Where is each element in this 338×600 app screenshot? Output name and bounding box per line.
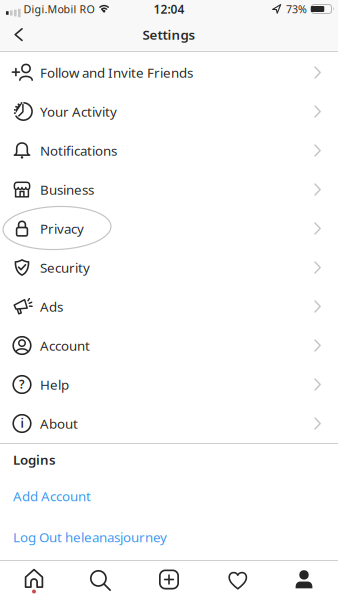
button[interactable]: ?: [0, 365, 338, 404]
button[interactable]: Profile: [295, 570, 313, 588]
staticText: Settings: [142, 26, 195, 43]
staticText: Security: [40, 259, 90, 276]
button[interactable]: Privacy: [0, 209, 338, 248]
staticText: 12:04: [153, 1, 184, 17]
staticText: i: [20, 415, 23, 431]
staticText: Digi.Mobil RO: [24, 2, 95, 16]
staticText: Privacy: [40, 220, 84, 237]
staticText: Business: [40, 181, 94, 198]
staticText: Logins: [13, 451, 56, 468]
staticText: Log Out heleanasjourney: [13, 528, 167, 546]
staticText: Account: [40, 337, 90, 354]
staticText: ?: [19, 376, 25, 392]
staticText: Ads: [40, 298, 63, 315]
staticText: Add Account: [13, 487, 91, 505]
button[interactable]: Search: [88, 568, 111, 591]
staticText: About: [40, 415, 78, 432]
button[interactable]: Log Out heleanasjourney: [0, 517, 338, 557]
button[interactable]: Business: [0, 170, 338, 209]
button[interactable]: Follow and Invite Friends: [0, 53, 338, 92]
button[interactable]: i: [0, 404, 338, 443]
button[interactable]: Security: [0, 248, 338, 287]
button[interactable]: Notifications: [0, 131, 338, 170]
button[interactable]: Add Account: [0, 475, 338, 517]
button[interactable]: Your Activity: [0, 92, 338, 131]
staticText: Your Activity: [40, 103, 117, 120]
staticText: Follow and Invite Friends: [40, 64, 193, 81]
staticText: 73%: [286, 2, 307, 16]
staticText: Notifications: [40, 142, 117, 159]
button[interactable]: Home: [22, 568, 46, 594]
button[interactable]: Ads: [0, 287, 338, 326]
button[interactable]: Activity: [228, 571, 247, 589]
button[interactable]: Account: [0, 326, 338, 365]
button[interactable]: Back: [0, 20, 23, 49]
staticText: Help: [40, 376, 69, 393]
button[interactable]: New Post: [159, 569, 179, 589]
